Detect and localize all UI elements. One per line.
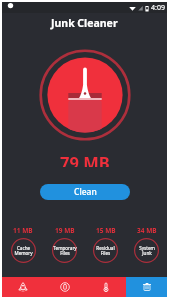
button[interactable]: 34 MB: [126, 226, 167, 263]
staticText: Cache Memory: [14, 245, 33, 257]
staticText: 15 MB: [96, 226, 116, 235]
staticText: Junk Cleaner: [51, 16, 118, 30]
staticText: Clean: [74, 186, 97, 198]
staticText: Temporary Files: [53, 245, 77, 257]
staticText: 11 MB: [13, 226, 33, 235]
button[interactable]: Battery saver: [44, 277, 85, 297]
staticText: System Junk: [139, 245, 155, 257]
staticText: Residual Files: [96, 245, 115, 257]
button[interactable]: 11 MB: [2, 226, 44, 263]
button[interactable]: Junk cleaner: [126, 277, 167, 297]
staticText: 79 MB: [60, 151, 110, 167]
button[interactable]: 15 MB: [85, 226, 126, 263]
button[interactable]: 19 MB: [44, 226, 85, 263]
staticText: 34 MB: [137, 226, 157, 235]
staticText: 4:09: [151, 3, 165, 13]
button[interactable]: Clean: [40, 184, 130, 200]
staticText: 19 MB: [55, 226, 75, 235]
button[interactable]: Phone boost: [2, 277, 44, 297]
button[interactable]: CPU cooler: [85, 277, 126, 297]
